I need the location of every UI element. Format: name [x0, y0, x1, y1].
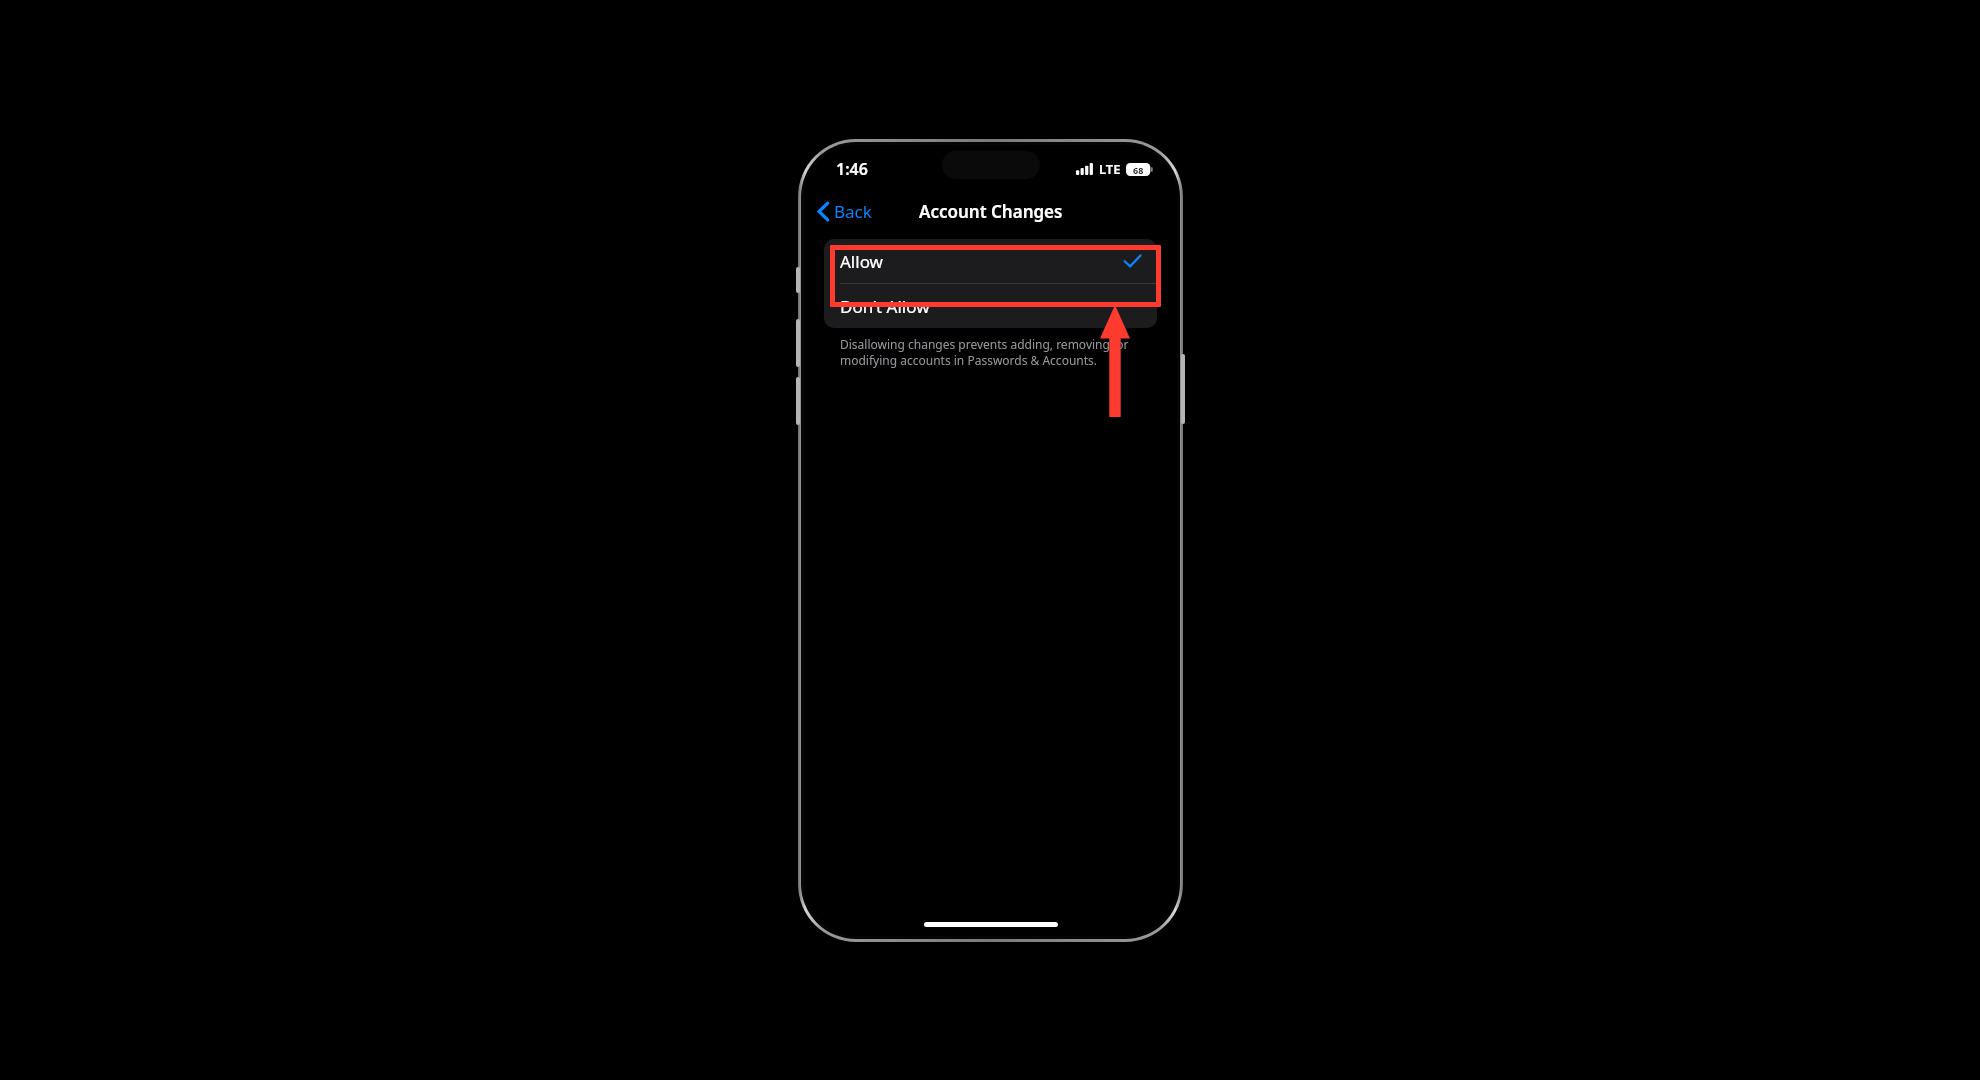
staticText: Don’t Allow [840, 295, 930, 318]
button[interactable]: Back [804, 194, 882, 229]
staticText: Account Changes [919, 200, 1063, 223]
staticText: Allow [840, 250, 883, 273]
staticText: LTE [1099, 160, 1121, 178]
button[interactable]: Don’t Allow [824, 284, 1157, 328]
staticText: Back [834, 200, 872, 223]
staticText: Disallowing changes prevents adding, rem… [840, 336, 1149, 368]
staticText: 1:46 [836, 158, 868, 180]
button[interactable]: Allow [824, 239, 1157, 283]
other: Selected [1124, 254, 1141, 268]
staticText: 68 [1133, 164, 1144, 176]
